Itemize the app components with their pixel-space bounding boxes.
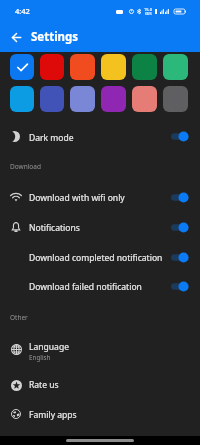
button[interactable]: Theme colour xyxy=(10,86,34,112)
staticText: Download failed notification xyxy=(29,281,142,293)
button[interactable]: Toggle xyxy=(171,131,189,142)
staticText: Dark mode xyxy=(29,132,74,144)
button[interactable]: Notifications xyxy=(0,213,200,243)
staticText: Language xyxy=(29,341,69,353)
button[interactable]: Theme colour xyxy=(132,54,157,80)
staticText: English xyxy=(29,353,51,362)
staticText: Download completed notification xyxy=(29,252,163,264)
button[interactable]: Theme colour xyxy=(40,54,64,80)
button[interactable]: Theme colour xyxy=(132,86,157,112)
button[interactable]: Toggle xyxy=(171,222,189,233)
button[interactable]: Theme colour xyxy=(70,86,95,112)
staticText: 15.0 xyxy=(144,7,152,12)
staticText: Rate us xyxy=(29,379,59,391)
staticText: Other xyxy=(10,313,28,322)
button[interactable]: Theme colour xyxy=(101,54,126,80)
button[interactable]: Family apps xyxy=(0,400,200,430)
button[interactable]: Theme colour xyxy=(163,54,188,80)
staticText: KB/S xyxy=(145,12,152,16)
button[interactable]: Dark mode xyxy=(0,123,200,153)
staticText: 4:42 xyxy=(15,6,30,16)
button[interactable]: Language xyxy=(0,332,200,370)
button[interactable]: Back xyxy=(5,26,27,48)
button[interactable]: Theme colour xyxy=(163,86,188,112)
button[interactable]: Theme colour xyxy=(70,54,95,80)
staticText: Notifications xyxy=(29,222,80,234)
button[interactable]: Download failed notification xyxy=(0,272,200,302)
button[interactable]: Theme colour xyxy=(10,54,34,80)
button[interactable]: Rate us xyxy=(0,370,200,400)
button[interactable]: Download with wifi only xyxy=(0,183,200,213)
button[interactable]: Theme colour xyxy=(40,86,64,112)
staticText: Download with wifi only xyxy=(29,192,125,204)
staticText: Download xyxy=(10,162,41,171)
button[interactable]: Download completed notification xyxy=(0,243,200,273)
staticText: Family apps xyxy=(29,409,77,421)
staticText: Settings xyxy=(31,29,79,45)
button[interactable]: Theme colour xyxy=(101,86,126,112)
button[interactable]: Toggle xyxy=(171,252,189,263)
button[interactable]: Toggle xyxy=(171,281,189,292)
button[interactable]: Toggle xyxy=(171,192,189,203)
